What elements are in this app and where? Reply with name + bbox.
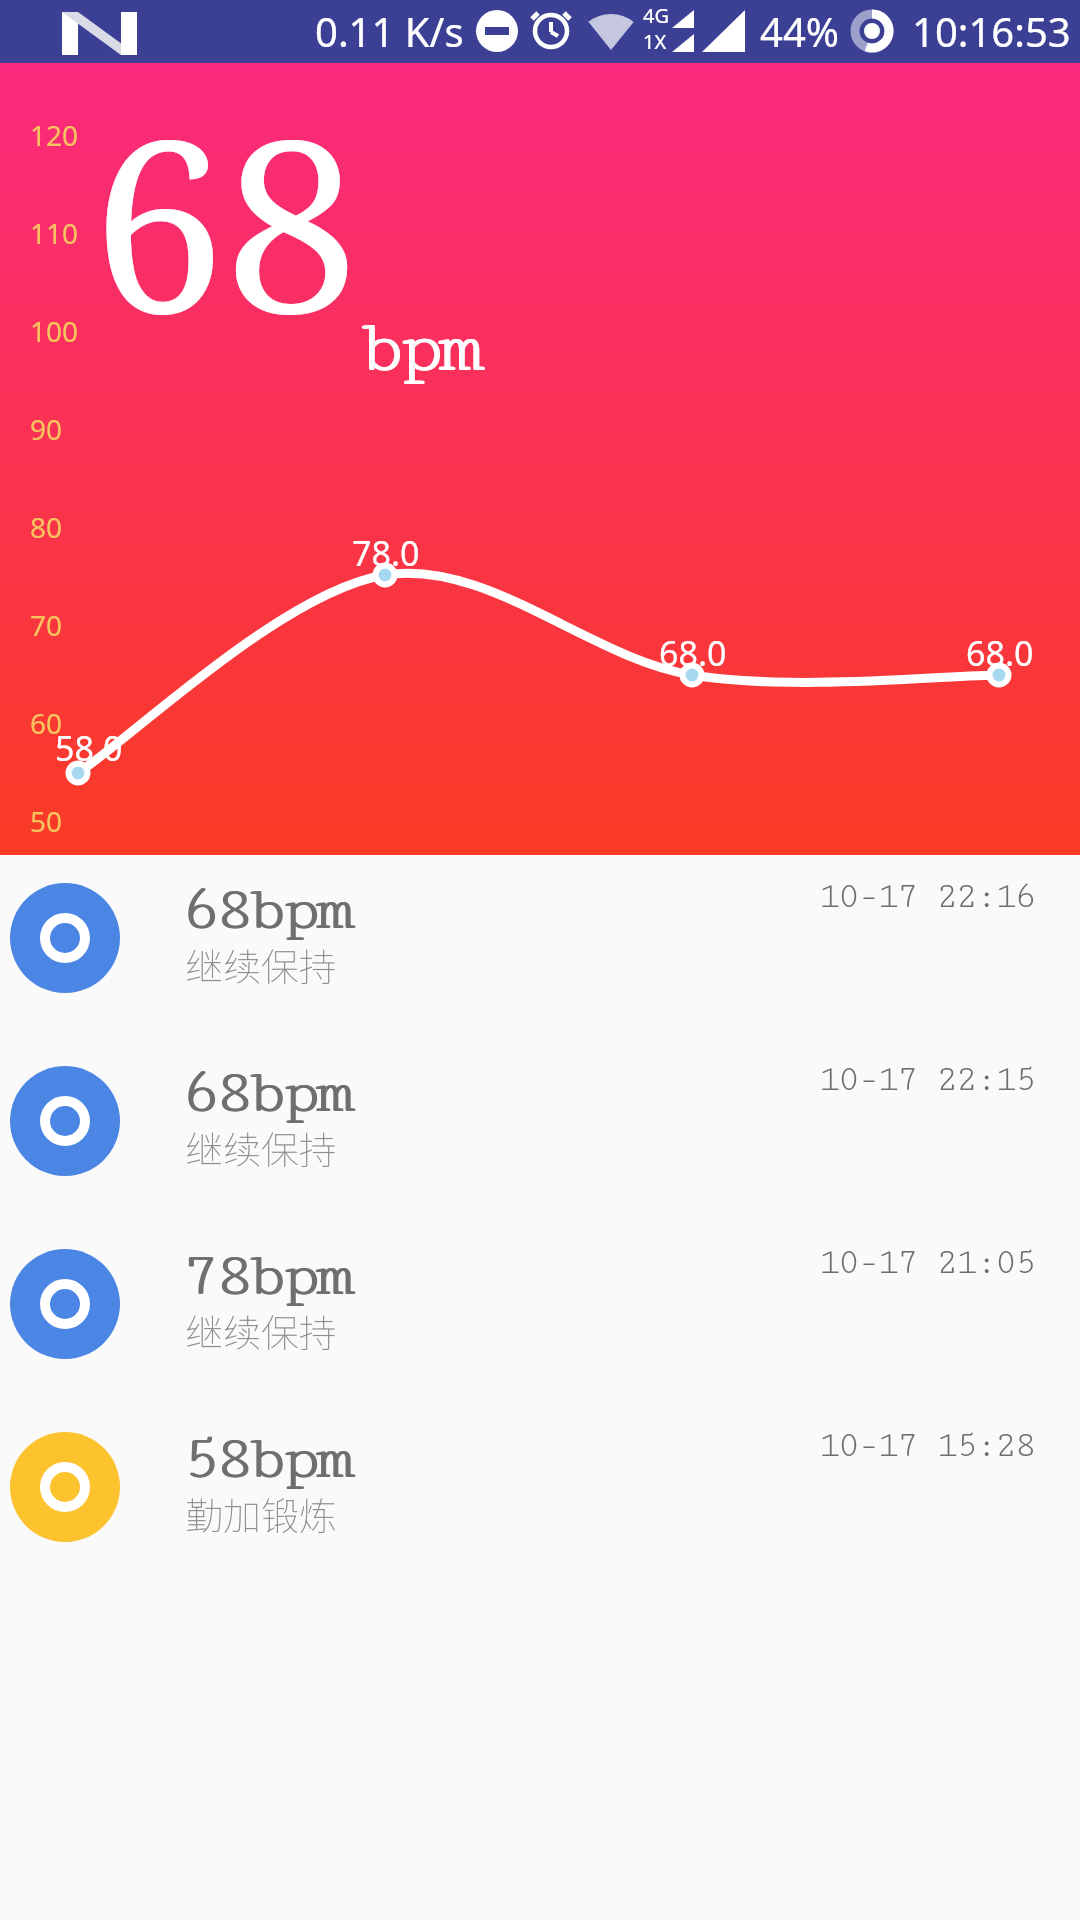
staticText: 68bpm bbox=[180, 873, 348, 946]
staticText: 继续保持 bbox=[185, 937, 338, 992]
button[interactable]: 68bpm bbox=[0, 1041, 1080, 1224]
staticText: 10-17 21:05 bbox=[818, 1242, 1034, 1284]
staticText: 90 bbox=[30, 410, 63, 448]
staticText: 继续保持 bbox=[185, 1303, 338, 1358]
staticText: bpm bbox=[360, 305, 478, 391]
button[interactable]: 68bpm bbox=[0, 858, 1080, 1041]
button[interactable]: 78bpm bbox=[0, 1224, 1080, 1407]
staticText: 68.0 bbox=[659, 630, 727, 676]
staticText: 勤加锻炼 bbox=[185, 1486, 338, 1541]
staticText: 68bpm bbox=[182, 1056, 350, 1129]
staticText: 60 bbox=[30, 704, 63, 742]
staticText: 70 bbox=[30, 606, 63, 644]
staticText: 1X bbox=[643, 28, 667, 55]
staticText: 50 bbox=[30, 802, 63, 840]
staticText: 58bpm bbox=[180, 1422, 348, 1495]
staticText: 4G bbox=[643, 2, 669, 29]
staticText: 44% bbox=[760, 4, 839, 58]
staticText: 78.0 bbox=[352, 530, 420, 576]
staticText: 78bpm bbox=[182, 1239, 350, 1312]
staticText: 80 bbox=[30, 508, 63, 546]
staticText: 68bpm bbox=[180, 1056, 348, 1129]
staticText: 78bpm bbox=[180, 1239, 348, 1312]
staticText: 68 bbox=[92, 59, 359, 383]
staticText: 10-17 22:16 bbox=[818, 876, 1034, 918]
staticText: 100 bbox=[30, 312, 79, 350]
staticText: 58.0 bbox=[55, 725, 123, 771]
staticText: 120 bbox=[30, 116, 79, 154]
staticText: 0.11 K/s bbox=[315, 4, 464, 58]
staticText: 68.0 bbox=[966, 630, 1034, 676]
staticText: 10-17 22:15 bbox=[818, 1059, 1034, 1101]
staticText: bpm bbox=[358, 305, 476, 391]
staticText: 58bpm bbox=[182, 1422, 350, 1495]
staticText: 10:16:53 bbox=[912, 4, 1071, 58]
staticText: 110 bbox=[30, 214, 79, 252]
staticText: 继续保持 bbox=[185, 1120, 338, 1175]
button[interactable]: 58bpm bbox=[0, 1407, 1080, 1590]
staticText: 10-17 15:28 bbox=[818, 1425, 1034, 1467]
staticText: 68bpm bbox=[182, 873, 350, 946]
